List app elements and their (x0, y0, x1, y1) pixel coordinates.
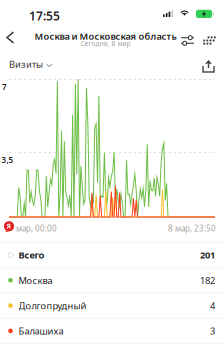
button[interactable]: Москва (0, 267, 224, 293)
staticText: Визиты (9, 58, 43, 70)
staticText: 201 (200, 249, 215, 261)
button[interactable]: All reports (199, 29, 220, 52)
staticText: мар, 00:00 (16, 223, 57, 234)
button[interactable]: Балашиха (0, 318, 224, 343)
button[interactable]: Back (0, 25, 20, 50)
button[interactable]: Визиты (8, 54, 53, 74)
staticText: Москва и Московская область (34, 30, 176, 42)
staticText: 3,5 (1, 154, 13, 165)
staticText: Долгопрудный (18, 299, 86, 312)
button[interactable]: Всего (0, 242, 224, 267)
staticText: Я (6, 222, 11, 231)
staticText: Балашиха (18, 325, 63, 337)
staticText: 7 (2, 81, 7, 92)
staticText: 3 (210, 325, 215, 337)
staticText: 4 (210, 299, 215, 312)
button[interactable]: Share (199, 55, 218, 74)
button[interactable]: Filters (177, 29, 198, 52)
staticText: 182 (200, 274, 215, 286)
staticText: Москва (18, 274, 52, 286)
staticText: 17:55 (29, 8, 60, 24)
staticText: Всего (18, 249, 44, 261)
staticText: Сегодня, 8 мар (80, 39, 130, 48)
staticText: 8 мар, 23:50 (168, 223, 216, 234)
button[interactable]: Долгопрудный (0, 293, 224, 318)
